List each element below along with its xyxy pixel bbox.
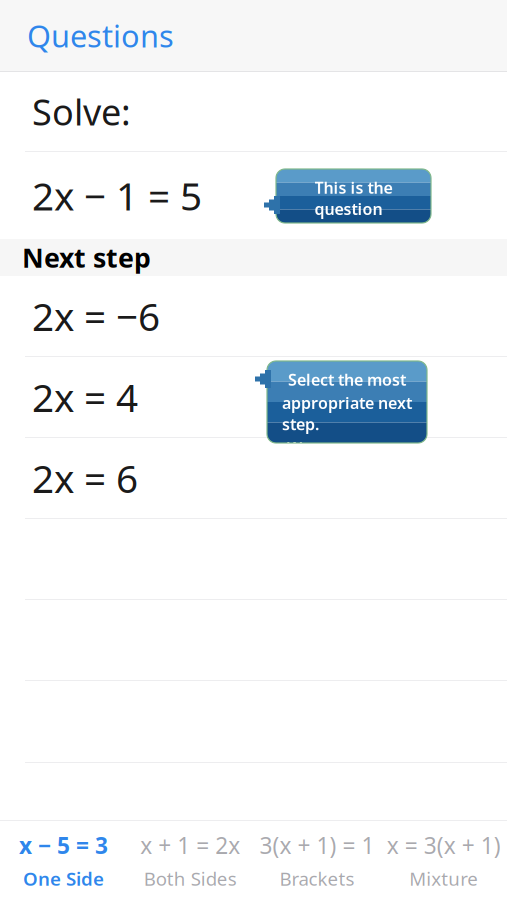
button[interactable]: x = 3(x + 1): [380, 821, 507, 899]
staticText: Next step: [22, 240, 151, 275]
button[interactable]: Questions: [0, 5, 174, 66]
staticText: Both Sides: [144, 866, 237, 891]
staticText: x − 5 = 3: [19, 830, 108, 860]
staticText: x + 1 = 2x: [140, 830, 240, 860]
button[interactable]: 3(x + 1) = 1: [253, 821, 380, 899]
staticText: 3(x + 1) = 1: [259, 830, 374, 860]
staticText: 2x = 4: [32, 371, 138, 423]
staticText: Wrong answers will: [287, 437, 407, 479]
staticText: 2x = −6: [32, 290, 160, 342]
button[interactable]: x − 5 = 3: [0, 821, 127, 899]
staticText: x = 3(x + 1): [387, 830, 501, 860]
staticText: 2x − 1 = 5: [32, 170, 202, 221]
staticText: for you to solve.: [291, 221, 416, 243]
staticText: One Side: [23, 866, 104, 891]
staticText: Select the most: [288, 369, 406, 390]
staticText: Mixture: [409, 866, 478, 891]
staticText: This is the question: [314, 177, 392, 219]
button[interactable]: 2x = 6: [0, 438, 507, 518]
button[interactable]: x + 1 = 2x: [127, 821, 254, 899]
staticText: 2x = 6: [32, 452, 138, 504]
staticText: Questions: [27, 15, 174, 56]
staticText: appropriate next step.: [282, 392, 412, 435]
button[interactable]: 2x = 4: [0, 357, 507, 437]
staticText: Solve:: [32, 88, 131, 135]
button[interactable]: 2x − 1 = 5: [0, 152, 507, 239]
button[interactable]: 2x = −6: [0, 276, 507, 356]
staticText: Brackets: [279, 866, 354, 891]
